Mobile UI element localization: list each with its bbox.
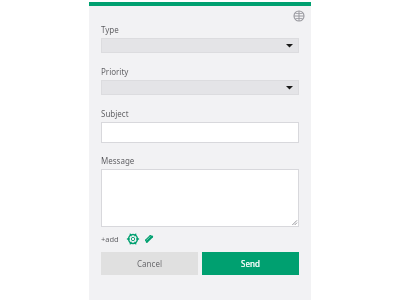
button[interactable]: Cancel [101,252,198,275]
staticText: Priority [101,66,129,77]
button[interactable]: Language [292,9,306,23]
staticText: Send [241,258,260,269]
button[interactable]: +add [101,234,119,244]
button[interactable]: Send [202,252,299,275]
button[interactable] [101,122,299,143]
button[interactable] [101,80,299,95]
staticText: Subject [101,108,129,119]
button[interactable]: Attach file [143,233,154,244]
button[interactable] [101,38,299,53]
staticText: Cancel [137,258,162,269]
staticText: +add [101,234,119,244]
button[interactable] [101,169,299,227]
staticText: Type [101,24,119,35]
staticText: Message [101,155,135,166]
button[interactable]: Add from settings [127,233,138,244]
